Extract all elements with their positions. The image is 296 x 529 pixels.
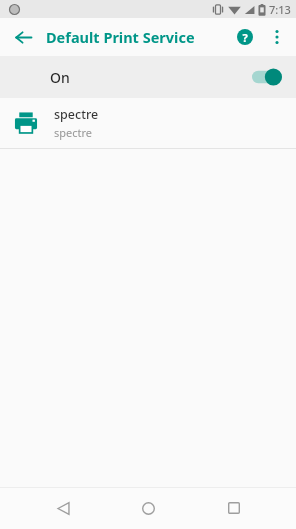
staticText: spectre [54, 125, 93, 140]
button[interactable]: Back [40, 487, 86, 529]
staticText: spectre [54, 106, 99, 123]
button[interactable]: spectre [0, 98, 296, 148]
button[interactable]: Recent apps [211, 487, 257, 529]
staticText: On [50, 68, 70, 87]
button[interactable]: Navigate up [6, 20, 40, 54]
button[interactable]: More options [262, 22, 292, 52]
button[interactable]: On [0, 56, 296, 98]
other: Enable print service [252, 67, 282, 87]
staticText: 7:13 [269, 2, 291, 17]
staticText: Default Print Service [46, 27, 195, 47]
button[interactable]: Home [125, 487, 171, 529]
button[interactable]: Help [228, 20, 262, 54]
staticText: ? [242, 30, 248, 45]
